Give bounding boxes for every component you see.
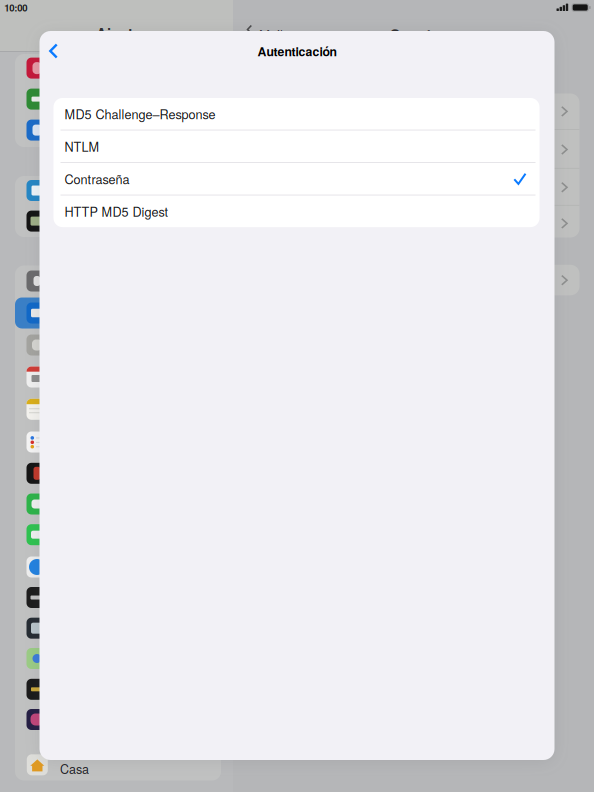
staticText: NTLM bbox=[64, 137, 99, 155]
button[interactable]: NTLM bbox=[53, 130, 539, 162]
staticText: Casa bbox=[60, 759, 89, 777]
staticText: Mail bbox=[259, 25, 283, 44]
button[interactable]: Contraseña bbox=[53, 163, 539, 195]
staticText: 10:00 bbox=[4, 1, 27, 14]
staticText: Autenticación bbox=[257, 42, 336, 60]
staticText: Cuenta bbox=[389, 24, 439, 45]
staticText: Contraseña bbox=[64, 170, 129, 188]
button[interactable]: MD5 Challenge–Response bbox=[53, 98, 539, 130]
staticText: MD5 Challenge–Response bbox=[64, 105, 215, 123]
button[interactable]: HTTP MD5 Digest bbox=[53, 195, 539, 227]
staticText: HTTP MD5 Digest bbox=[64, 202, 168, 220]
button[interactable]: Atrás bbox=[39, 37, 67, 65]
staticText: Ajustes bbox=[96, 22, 149, 43]
